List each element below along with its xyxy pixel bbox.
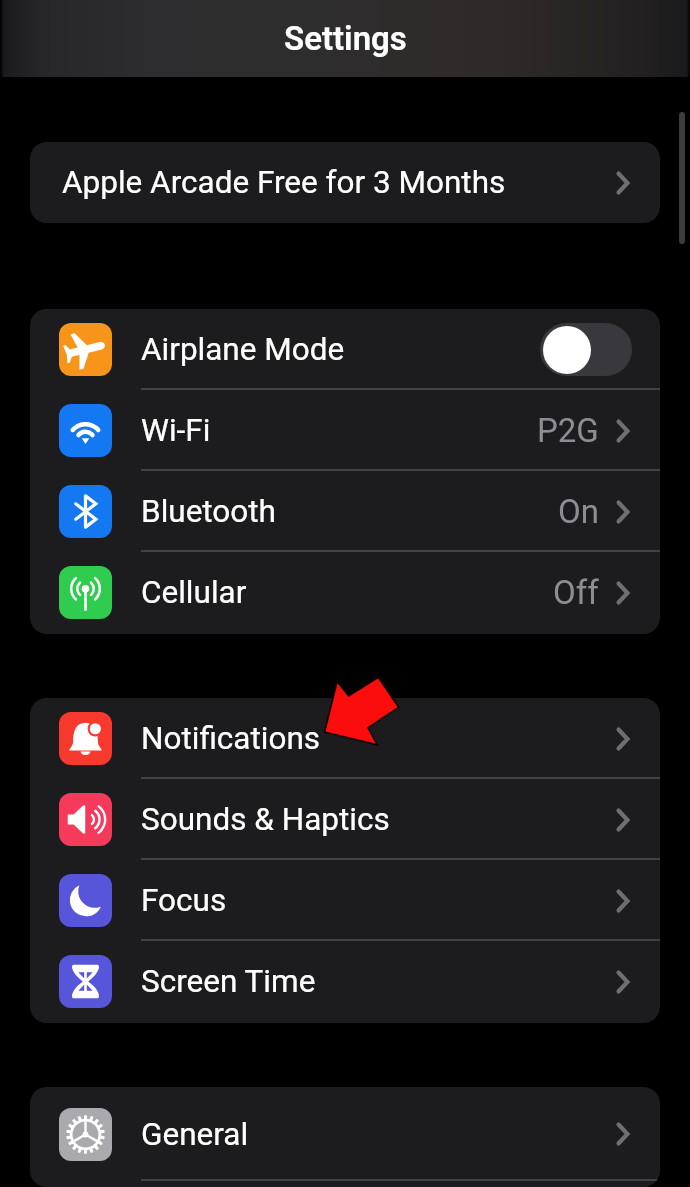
staticText: On	[558, 492, 599, 531]
button[interactable]: Notifications	[30, 698, 660, 779]
staticText: Cellular	[141, 574, 247, 611]
staticText: Apple Arcade Free for 3 Months	[62, 164, 506, 201]
button[interactable]: Focus	[30, 860, 660, 941]
button[interactable]: Sounds & Haptics	[30, 779, 660, 860]
staticText: Off	[553, 573, 599, 612]
staticText: Sounds & Haptics	[141, 801, 390, 838]
staticText: General	[141, 1116, 249, 1153]
staticText: Wi-Fi	[141, 412, 211, 449]
staticText: P2G	[537, 411, 599, 450]
button[interactable]: Screen Time	[30, 941, 660, 1022]
staticText: Notifications	[141, 720, 321, 757]
staticText: Screen Time	[141, 963, 316, 1000]
staticText: Focus	[141, 882, 227, 919]
button[interactable]: Toggle Airplane Mode	[540, 323, 632, 376]
button[interactable]: General	[30, 1087, 660, 1181]
staticText: Airplane Mode	[141, 331, 345, 368]
button[interactable]: Wi-Fi	[30, 390, 660, 471]
staticText: Bluetooth	[141, 493, 276, 530]
staticText: Settings	[284, 19, 407, 58]
button[interactable]: Cellular	[30, 552, 660, 633]
button[interactable]: Bluetooth	[30, 471, 660, 552]
button[interactable]: Airplane Mode	[30, 309, 660, 390]
button[interactable]: Apple Arcade Free for 3 Months	[30, 142, 660, 223]
